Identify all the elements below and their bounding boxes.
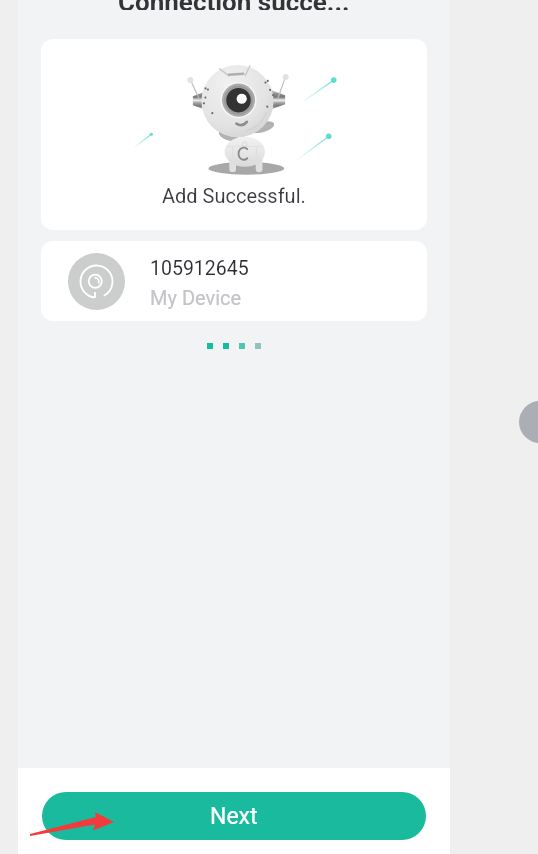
- button[interactable]: Next: [42, 792, 426, 840]
- staticText: Next: [210, 803, 258, 830]
- staticText: My Device: [150, 286, 242, 309]
- staticText: 105912645: [150, 257, 249, 280]
- button[interactable]: Scroll helper: [519, 401, 538, 443]
- staticText: Add Successful.: [162, 184, 306, 207]
- staticText: Connection succe...: [118, 0, 350, 10]
- button[interactable]: 105912645: [41, 241, 427, 321]
